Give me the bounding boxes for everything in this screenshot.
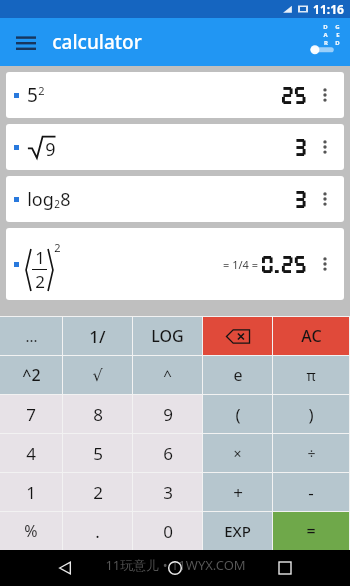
staticText: ( (235, 403, 241, 426)
button[interactable]: 1 (6, 228, 344, 300)
button[interactable]: 9 (133, 395, 202, 433)
button[interactable]: 1 (0, 473, 62, 511)
button[interactable]: More options (314, 124, 336, 170)
button[interactable]: log (6, 176, 344, 222)
button[interactable]: ^ (133, 356, 202, 394)
staticText: 8 (60, 187, 71, 212)
staticText: 0 (163, 520, 173, 543)
staticText: 6 (163, 442, 173, 465)
button[interactable]: Toggle radians or degrees (304, 23, 342, 61)
button[interactable]: ( (203, 395, 272, 433)
button[interactable]: 6 (133, 434, 202, 472)
button[interactable]: 9 (6, 124, 344, 170)
staticText: 3 (163, 481, 173, 504)
staticText: ^2 (22, 364, 41, 386)
staticText: √ (92, 366, 103, 385)
button[interactable]: 1/ (63, 317, 132, 355)
staticText: ^ (163, 365, 172, 385)
staticText: 7 (26, 403, 36, 426)
button[interactable]: √ (63, 356, 132, 394)
staticText: calculator (52, 29, 142, 55)
staticText: 2 (35, 270, 45, 293)
button[interactable]: 5 (63, 434, 132, 472)
staticText: = 1/4 = (223, 257, 258, 272)
staticText: = (306, 520, 316, 542)
staticText: 1 (26, 481, 36, 504)
staticText: 2 (38, 83, 45, 98)
staticText: R (324, 39, 328, 47)
staticText: e (233, 364, 243, 386)
button[interactable]: ... (0, 317, 62, 355)
button[interactable]: 2 (63, 473, 132, 511)
staticText: A (323, 31, 328, 39)
button[interactable]: - (273, 473, 349, 511)
button[interactable]: 5 (6, 72, 344, 118)
staticText: AC (301, 325, 322, 347)
staticText: EXP (224, 521, 251, 541)
button[interactable]: Home (162, 555, 188, 581)
button[interactable]: × (203, 434, 272, 472)
button[interactable]: Open navigation menu (10, 26, 42, 58)
staticText: 11:16 (313, 1, 344, 17)
button[interactable]: More options (314, 176, 336, 222)
staticText: 8 (93, 403, 103, 426)
button[interactable]: 3 (133, 473, 202, 511)
button[interactable]: EXP (203, 512, 272, 550)
staticText: 2 (93, 481, 103, 504)
staticText: 1 (35, 246, 45, 269)
staticText: ) (308, 403, 314, 426)
staticText: 1/ (89, 325, 106, 348)
button[interactable]: + (203, 473, 272, 511)
staticText: 9 (163, 403, 173, 426)
button[interactable]: ) (273, 395, 349, 433)
button[interactable]: = (273, 512, 349, 550)
button[interactable]: More options (314, 72, 336, 118)
button[interactable]: Backspace (203, 317, 272, 355)
staticText: ... (25, 326, 38, 346)
button[interactable]: ÷ (273, 434, 349, 472)
staticText: × (233, 444, 242, 463)
button[interactable]: LOG (133, 317, 202, 355)
button[interactable]: Recent apps (272, 555, 298, 581)
button[interactable]: AC (273, 317, 349, 355)
staticText: 2 (54, 197, 60, 211)
staticText: E (336, 31, 340, 39)
staticText: 4 (26, 442, 36, 465)
button[interactable]: 7 (0, 395, 62, 433)
staticText: log (27, 187, 54, 212)
staticText: 11玩意儿 • 11WYX.COM (105, 556, 246, 574)
button[interactable]: More options (314, 228, 336, 300)
staticText: % (24, 520, 38, 542)
staticText: 2 (54, 240, 61, 255)
staticText: + (233, 481, 243, 504)
staticText: . (95, 520, 100, 543)
staticText: 9 (45, 137, 56, 160)
button[interactable]: ^2 (0, 356, 62, 394)
staticText: 5 (93, 442, 103, 465)
button[interactable]: e (203, 356, 272, 394)
staticText: D (323, 23, 328, 31)
button[interactable]: . (63, 512, 132, 550)
staticText: π (306, 366, 316, 385)
staticText: LOG (151, 325, 184, 347)
button[interactable]: Back (52, 555, 78, 581)
button[interactable]: 0 (133, 512, 202, 550)
staticText: 5 (27, 82, 38, 108)
button[interactable]: % (0, 512, 62, 550)
staticText: - (308, 481, 314, 504)
button[interactable]: 4 (0, 434, 62, 472)
staticText: G (335, 23, 340, 31)
staticText: D (335, 39, 340, 47)
button[interactable]: 8 (63, 395, 132, 433)
staticText: ÷ (307, 444, 316, 463)
button[interactable]: π (273, 356, 349, 394)
